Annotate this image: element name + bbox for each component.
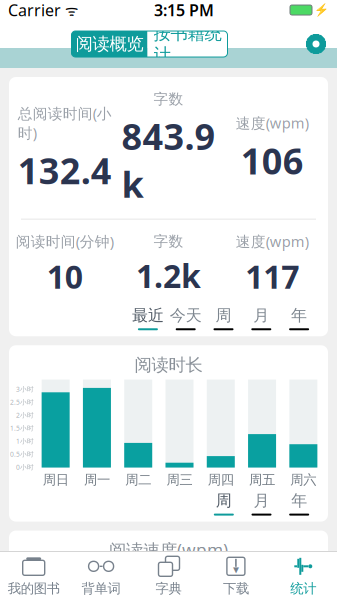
button[interactable]: 我的图书 (0, 552, 67, 600)
staticText: 周二 (125, 471, 151, 488)
staticText: 速度(wpm) (236, 113, 309, 133)
button[interactable]: 最近 (129, 306, 167, 330)
staticText: ▾ (233, 562, 239, 576)
staticText: 字数 (153, 232, 183, 250)
staticText: 0小时 (16, 463, 34, 471)
staticText: 224 (15, 582, 36, 597)
staticText: 132.4 (18, 146, 112, 194)
button[interactable]: 年 (280, 306, 318, 330)
staticText: 周日 (43, 471, 69, 488)
staticText: Carrier (8, 0, 61, 21)
staticText: 3小时 (16, 385, 34, 393)
staticText: 周五 (249, 471, 275, 488)
staticText: 按书籍统计 (153, 23, 221, 65)
staticText: ⚡ (314, 3, 329, 17)
staticText: ᯤ (61, 0, 78, 20)
button[interactable]: ▾ (202, 552, 270, 600)
staticText: 今天 (170, 306, 202, 325)
button[interactable]: 统计 (270, 552, 337, 600)
staticText: 2.5小时 (10, 398, 34, 406)
staticText: 阅读时长 (134, 354, 202, 376)
staticText: 2小时 (16, 411, 34, 419)
staticText: 背单词 (82, 580, 121, 597)
staticText: 下载 (223, 580, 249, 597)
staticText: 总阅读时间(小时) (18, 103, 112, 142)
staticText: 10 (47, 255, 83, 298)
staticText: 字典 (155, 580, 181, 597)
button[interactable]: 今天 (167, 306, 205, 330)
staticText: 周 (215, 306, 231, 325)
staticText: 月 (253, 306, 269, 325)
button[interactable]: 年 (280, 491, 318, 516)
staticText: 周一 (84, 471, 110, 488)
staticText: 周六 (290, 471, 316, 488)
staticText: 字数 (153, 90, 183, 108)
button[interactable]: 阅读概览 (71, 31, 147, 57)
staticText: 0.5小时 (10, 450, 34, 458)
staticText: 阅读概览 (75, 33, 143, 55)
staticText: 统计 (290, 580, 316, 597)
button[interactable]: 周 (205, 306, 242, 330)
button[interactable]: 月 (242, 306, 280, 330)
button[interactable]: 设置 (297, 26, 335, 62)
staticText: 阅读速度(wpm) (109, 539, 228, 562)
button[interactable]: 月 (243, 491, 280, 516)
staticText: 周四 (208, 471, 234, 488)
staticText: 1.5小时 (10, 424, 34, 432)
staticText: 年 (291, 306, 307, 325)
button[interactable]: 按书籍统计 (147, 31, 227, 57)
staticText: 年 (291, 491, 307, 511)
staticText: 1.2k (136, 254, 201, 297)
staticText: 106 (241, 137, 304, 184)
button[interactable]: 周 (205, 491, 243, 516)
staticText: 843.9k (121, 112, 215, 208)
staticText: 280 (15, 566, 36, 581)
staticText: 速度(wpm) (236, 232, 309, 251)
staticText: 1小时 (16, 437, 34, 445)
staticText: 周三 (166, 471, 192, 488)
staticText: 月 (253, 491, 269, 511)
button[interactable]: 字典 (135, 552, 202, 600)
staticText: 周 (216, 491, 232, 511)
staticText: 阅读时间(分钟) (16, 232, 114, 251)
staticText: 3:15 PM (154, 0, 214, 21)
staticText: 我的图书 (8, 580, 60, 597)
staticText: 最近 (132, 306, 164, 325)
button[interactable]: 背单词 (67, 552, 135, 600)
staticText: 117 (245, 255, 299, 298)
